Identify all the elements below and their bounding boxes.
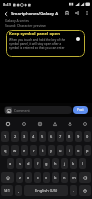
button[interactable]: m bbox=[70, 172, 77, 183]
button[interactable]: b bbox=[52, 172, 59, 183]
staticText: v bbox=[45, 175, 48, 180]
button[interactable]: n bbox=[61, 172, 68, 183]
button[interactable]: o bbox=[75, 145, 82, 156]
button[interactable]: e bbox=[21, 145, 28, 156]
button[interactable]: i bbox=[66, 145, 73, 156]
button[interactable]: Voice input bbox=[62, 117, 77, 130]
staticText: u bbox=[59, 148, 62, 153]
staticText: o bbox=[77, 148, 80, 153]
staticText: 2 bbox=[14, 134, 17, 139]
staticText: Galaxy A series bbox=[5, 18, 29, 23]
button[interactable]: j bbox=[61, 158, 68, 169]
button[interactable]: u bbox=[57, 145, 64, 156]
staticText: j bbox=[64, 161, 66, 166]
button[interactable]: a bbox=[7, 158, 14, 169]
button[interactable]: 5 bbox=[39, 131, 46, 142]
staticText: n bbox=[63, 175, 66, 180]
staticText: 8 bbox=[68, 134, 71, 139]
staticText: Comment bbox=[14, 108, 30, 113]
staticText: 6 bbox=[50, 134, 53, 139]
staticText: , bbox=[18, 188, 20, 193]
staticText: d bbox=[27, 161, 30, 166]
staticText: p bbox=[86, 148, 89, 153]
button[interactable]: . bbox=[70, 185, 77, 196]
button[interactable]: 3 bbox=[21, 131, 28, 142]
button[interactable]: f bbox=[34, 158, 41, 169]
button[interactable]: More options bbox=[82, 8, 92, 18]
staticText: w bbox=[13, 148, 17, 153]
staticText: 1 bbox=[4, 134, 7, 139]
staticText: e bbox=[23, 148, 26, 153]
button[interactable]: 0 bbox=[84, 131, 91, 142]
staticText: 4 bbox=[32, 134, 35, 139]
staticText: Smartphones/Galaxy A bbox=[11, 10, 58, 16]
staticText: 7 bbox=[59, 134, 62, 139]
button[interactable]: 2 bbox=[11, 131, 19, 142]
button[interactable]: Attach image bbox=[4, 106, 72, 114]
button[interactable]: z bbox=[16, 172, 23, 183]
staticText: y bbox=[50, 148, 53, 153]
button[interactable]: d bbox=[25, 158, 32, 169]
staticText: 8:49 bbox=[3, 2, 11, 7]
staticText: b bbox=[54, 175, 57, 180]
button[interactable]: Send bbox=[73, 106, 88, 114]
button[interactable]: Stickers bbox=[16, 117, 32, 130]
button[interactable]: Clipboard bbox=[32, 117, 47, 130]
button[interactable]: Emoji bbox=[79, 185, 91, 196]
button[interactable]: Backspace bbox=[79, 172, 91, 183]
button[interactable]: English (US) bbox=[24, 185, 68, 196]
staticText: z bbox=[19, 175, 21, 180]
other: Attach image bbox=[5, 107, 12, 114]
staticText: Keep symbol panel open bbox=[9, 31, 60, 37]
button[interactable]: Shift bbox=[1, 172, 14, 183]
button[interactable]: v bbox=[43, 172, 50, 183]
staticText: !#1 bbox=[4, 188, 10, 193]
staticText: When you touch and hold the key of the s… bbox=[9, 38, 70, 50]
staticText: . bbox=[73, 188, 75, 193]
staticText: t bbox=[42, 148, 44, 153]
button[interactable]: 4 bbox=[30, 131, 37, 142]
staticText: l bbox=[82, 161, 84, 166]
staticText: h bbox=[54, 161, 57, 166]
staticText: s bbox=[19, 161, 21, 166]
button[interactable]: g bbox=[43, 158, 50, 169]
button[interactable]: c bbox=[34, 172, 41, 183]
button[interactable]: Close tip bbox=[76, 37, 80, 41]
staticText: a bbox=[9, 161, 12, 166]
button[interactable]: t bbox=[39, 145, 46, 156]
button[interactable]: Keep symbol panel open bbox=[6, 30, 85, 57]
button[interactable]: 1 bbox=[1, 131, 9, 142]
button[interactable]: l bbox=[79, 158, 86, 169]
staticText: c bbox=[37, 175, 39, 180]
button[interactable]: Back bbox=[1, 9, 10, 18]
button[interactable]: h bbox=[52, 158, 59, 169]
staticText: r bbox=[33, 148, 35, 153]
staticText: Sound: Character preview bbox=[5, 23, 46, 28]
button[interactable]: k bbox=[70, 158, 77, 169]
button[interactable]: !#1 bbox=[1, 185, 13, 196]
button[interactable]: 9 bbox=[75, 131, 82, 142]
button[interactable]: x bbox=[25, 172, 32, 183]
staticText: Post bbox=[77, 108, 84, 112]
button[interactable]: Translate bbox=[47, 117, 62, 130]
staticText: 3 bbox=[23, 134, 26, 139]
button[interactable]: w bbox=[11, 145, 19, 156]
staticText: 5 bbox=[41, 134, 44, 139]
button[interactable]: p bbox=[84, 145, 91, 156]
button[interactable]: Share bbox=[72, 8, 82, 18]
button[interactable]: 8 bbox=[66, 131, 73, 142]
button[interactable]: , bbox=[15, 185, 22, 196]
staticText: g bbox=[45, 161, 48, 166]
staticText: i bbox=[69, 148, 71, 153]
button[interactable]: Settings bbox=[0, 117, 16, 130]
button[interactable]: q bbox=[1, 145, 9, 156]
button[interactable]: 6 bbox=[48, 131, 55, 142]
button[interactable]: 7 bbox=[57, 131, 64, 142]
staticText: x bbox=[27, 175, 30, 180]
button[interactable]: r bbox=[30, 145, 37, 156]
button[interactable]: Bookmark bbox=[62, 8, 72, 18]
button[interactable]: More bbox=[77, 117, 92, 130]
staticText: k bbox=[72, 161, 75, 166]
button[interactable]: s bbox=[16, 158, 23, 169]
button[interactable]: y bbox=[48, 145, 55, 156]
